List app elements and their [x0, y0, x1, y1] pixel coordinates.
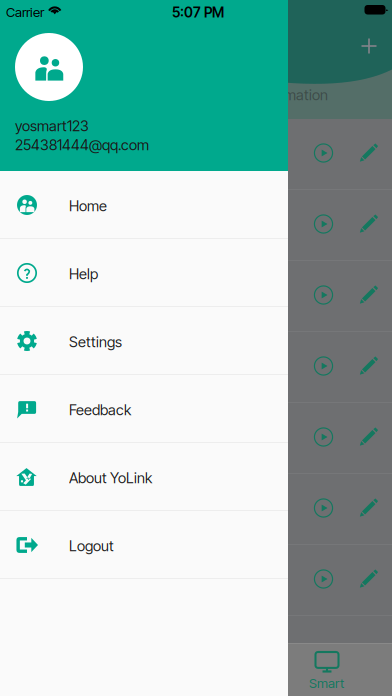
button[interactable]: Edit: [349, 276, 387, 314]
button[interactable]: Help: [0, 239, 288, 307]
button[interactable]: Edit: [349, 489, 387, 527]
staticText: Automation: [254, 86, 328, 104]
button[interactable]: Run: [304, 205, 342, 243]
staticText: Logout: [69, 537, 114, 555]
button[interactable]: Edit: [349, 418, 387, 456]
button[interactable]: Edit: [349, 347, 387, 385]
staticText: Home: [69, 197, 107, 215]
button[interactable]: Run: [304, 560, 342, 598]
staticText: 254381444@qq.com: [15, 136, 149, 154]
staticText: Settings: [69, 333, 122, 351]
staticText: Feedback: [69, 401, 131, 419]
button[interactable]: Edit: [349, 560, 387, 598]
button[interactable]: Run: [304, 489, 342, 527]
staticText: yosmart123: [15, 117, 89, 135]
button[interactable]: Home: [0, 171, 288, 239]
staticText: Help: [69, 265, 98, 283]
staticText: About YoLink: [69, 469, 152, 487]
staticText: 5:07 PM: [172, 4, 224, 21]
staticText: Smart: [309, 675, 344, 691]
button[interactable]: Edit: [349, 134, 387, 172]
button[interactable]: Add: [349, 26, 389, 66]
button[interactable]: About YoLink: [0, 443, 288, 511]
button[interactable]: Edit: [349, 205, 387, 243]
button[interactable]: Run: [304, 347, 342, 385]
staticText: Carrier: [6, 4, 44, 20]
button[interactable]: Settings: [0, 307, 288, 375]
button[interactable]: Run: [304, 418, 342, 456]
button[interactable]: Run: [304, 134, 342, 172]
button[interactable]: Run: [304, 276, 342, 314]
button[interactable]: Logout: [0, 511, 288, 579]
button[interactable]: Smart: [287, 645, 367, 695]
button[interactable]: Feedback: [0, 375, 288, 443]
